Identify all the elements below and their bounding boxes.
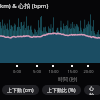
staticText: 心拍 [89,85,97,95]
staticText: 0:00 [13,69,21,74]
staticText: 20:00 [83,69,94,74]
staticText: 時間 (秒) [58,76,78,83]
button[interactable]: 上下動 (cm) [2,85,39,95]
staticText: 上下動比 (%) [47,87,76,94]
staticText: 10:00 [48,69,59,74]
staticText: km) & 心拍 (bpm) [0,2,49,10]
staticText: 15:00 [67,69,78,74]
staticText: 上下動 (cm) [7,87,34,94]
staticText: 5:00 [33,69,41,74]
button[interactable]: 上下動比 (%) [42,85,81,95]
button[interactable]: 心拍 [84,85,100,95]
